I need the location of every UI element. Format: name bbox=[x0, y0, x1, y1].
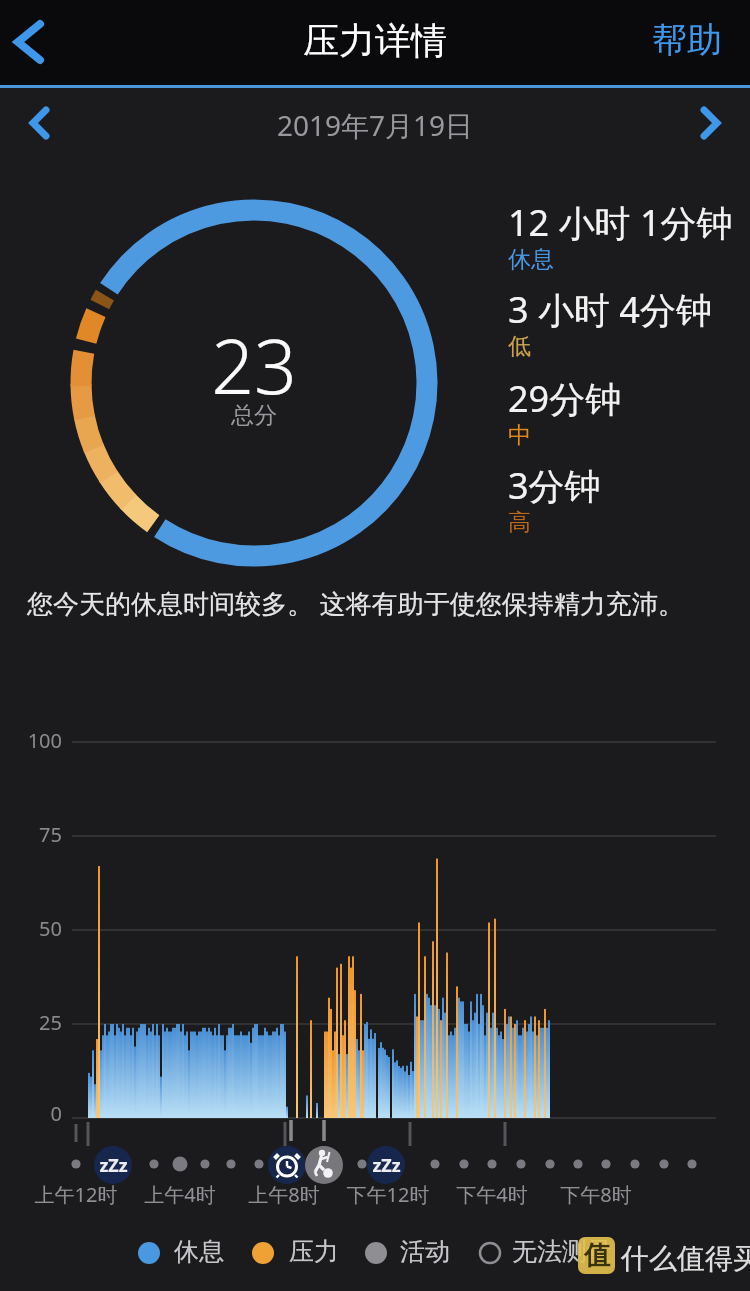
staticText: 23 bbox=[154, 314, 354, 414]
staticText: 压力详情 bbox=[0, 18, 750, 63]
staticText: 值 bbox=[584, 1239, 610, 1272]
button[interactable] bbox=[305, 1146, 343, 1184]
staticText: 25 bbox=[39, 1009, 62, 1036]
staticText: zZz bbox=[99, 1153, 128, 1178]
staticText: 下午12时 bbox=[308, 1181, 468, 1208]
button[interactable]: 帮助 bbox=[652, 18, 722, 62]
staticText: 2019年7月19日 bbox=[0, 106, 750, 144]
staticText: 无法测量 bbox=[512, 1236, 612, 1267]
button[interactable] bbox=[24, 104, 60, 144]
staticText: 上午4时 bbox=[100, 1181, 260, 1208]
staticText: 您今天的休息时间较多。 这将有助于使您保持精力充沛。 bbox=[27, 585, 684, 621]
staticText: 29分钟 bbox=[508, 374, 622, 423]
staticText: 高 bbox=[508, 508, 531, 537]
staticText: 75 bbox=[39, 821, 62, 848]
staticText: 总分 bbox=[154, 401, 354, 441]
button[interactable]: zZz bbox=[367, 1146, 405, 1184]
staticText: 上午8时 bbox=[204, 1181, 364, 1208]
staticText: 什么值得买 bbox=[621, 1241, 750, 1276]
staticText: 休息 bbox=[508, 245, 554, 274]
staticText: 休息 bbox=[174, 1236, 224, 1267]
staticText: 下午4时 bbox=[412, 1181, 572, 1208]
button[interactable] bbox=[6, 14, 58, 70]
staticText: zZz bbox=[372, 1153, 401, 1178]
staticText: 100 bbox=[27, 727, 62, 754]
staticText: 下午8时 bbox=[516, 1181, 676, 1208]
button[interactable] bbox=[268, 1146, 306, 1184]
staticText: 12 小时 1分钟 bbox=[508, 198, 733, 247]
staticText: 压力 bbox=[289, 1236, 339, 1267]
staticText: 活动 bbox=[400, 1236, 450, 1267]
staticText: 上午12时 bbox=[0, 1181, 156, 1208]
staticText: 3分钟 bbox=[508, 461, 601, 510]
button[interactable]: zZz bbox=[94, 1146, 132, 1184]
staticText: 帮助 bbox=[652, 18, 722, 62]
staticText: 低 bbox=[508, 332, 531, 361]
staticText: 3 小时 4分钟 bbox=[508, 285, 712, 334]
staticText: 50 bbox=[39, 915, 62, 942]
staticText: 中 bbox=[508, 421, 531, 450]
button[interactable] bbox=[690, 104, 726, 144]
staticText: 0 bbox=[50, 1100, 62, 1127]
